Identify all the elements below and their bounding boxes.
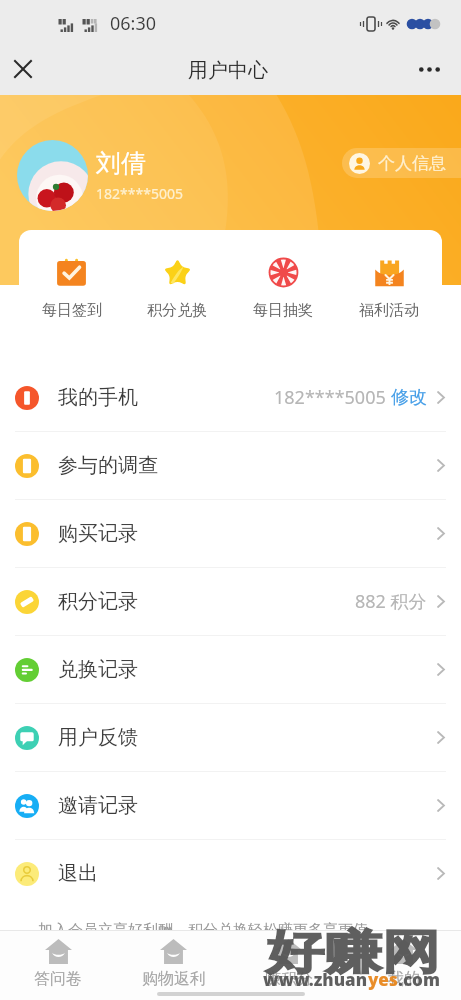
staticText: 福利活动	[359, 301, 419, 320]
button[interactable]: 积分记录	[0, 568, 461, 635]
staticText: 刘倩	[96, 148, 146, 179]
button[interactable]: 用户反馈	[0, 704, 461, 771]
staticText: 购物返利	[142, 969, 206, 988]
staticText: 积分兑换	[147, 301, 207, 320]
button[interactable]: 退出	[0, 840, 461, 907]
staticText: 答问卷	[34, 969, 82, 988]
staticText: 参与的调查	[58, 453, 158, 478]
staticText: 修改	[391, 386, 427, 409]
staticText: 182****5005	[274, 385, 386, 410]
button[interactable]: 我的	[346, 931, 461, 988]
button[interactable]: 购买记录	[0, 500, 461, 567]
button[interactable]: 个人信息	[342, 148, 461, 178]
button[interactable]: 参与的调查	[0, 432, 461, 499]
staticText: yes	[368, 968, 398, 991]
staticText: 06:30	[110, 11, 157, 36]
staticText: 加入会员立享好利酬，积分兑换轻松赚更多享更值	[38, 921, 368, 940]
button[interactable]: 答问卷	[0, 931, 116, 988]
button[interactable]: 福利活动	[336, 230, 442, 343]
button[interactable]: More options	[414, 54, 444, 84]
staticText: www.zhuan	[263, 968, 368, 991]
staticText: 兑换记录	[58, 657, 138, 682]
staticText: 好赚网	[266, 923, 440, 982]
staticText: 用户中心	[188, 58, 268, 83]
staticText: 个人信息	[378, 153, 446, 174]
button[interactable]: 每日签到	[19, 230, 124, 343]
staticText: 购买记录	[58, 521, 138, 546]
button[interactable]: 兑换记录	[0, 636, 461, 703]
staticText: 邀请记录	[58, 793, 138, 818]
button[interactable]: 每日抽奖	[230, 230, 336, 343]
button[interactable]: 积分兑换	[124, 230, 230, 343]
button[interactable]: 赚积分	[231, 931, 346, 988]
staticText: 赚积分	[265, 969, 313, 988]
staticText: 882 积分	[355, 589, 427, 614]
staticText: 每日签到	[42, 301, 102, 320]
staticText: .com	[398, 968, 440, 991]
staticText: 182****5005	[96, 184, 183, 203]
button[interactable]: 邀请记录	[0, 772, 461, 839]
staticText: 我的手机	[58, 385, 138, 410]
staticText: 用户反馈	[58, 725, 138, 750]
staticText: 每日抽奖	[253, 301, 313, 320]
button[interactable]: Close	[8, 54, 38, 84]
button[interactable]: 购物返利	[116, 931, 231, 988]
staticText: 我的	[388, 969, 420, 988]
staticText: 积分记录	[58, 589, 138, 614]
button[interactable]: 我的手机	[0, 364, 461, 431]
staticText: 退出	[58, 861, 98, 886]
